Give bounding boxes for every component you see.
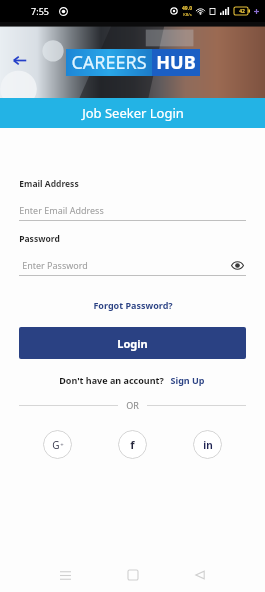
button[interactable]: Back <box>187 562 213 588</box>
button[interactable]: Enter Password <box>19 255 246 275</box>
button[interactable]: Login <box>19 327 246 359</box>
staticText: CAREERS <box>71 50 147 75</box>
staticText: 7:55 <box>31 5 49 17</box>
button[interactable]: CAREERS <box>66 49 200 76</box>
staticText: OR <box>126 399 139 411</box>
button[interactable]: Show password <box>228 256 246 274</box>
button[interactable]: Sign in with Facebook <box>118 430 147 459</box>
staticText: Job Seeker Login <box>82 104 184 122</box>
staticText: Forgot Password? <box>93 299 173 311</box>
button[interactable]: Sign in with Google <box>43 430 72 459</box>
staticText: Enter Email Address <box>19 204 104 216</box>
staticText: Password <box>19 233 60 245</box>
button[interactable]: Recents <box>52 562 78 588</box>
staticText: Don't have an account? <box>59 374 164 386</box>
button[interactable]: Sign Up <box>168 372 207 388</box>
staticText: Sign Up <box>170 374 205 386</box>
staticText: KB/s <box>183 12 192 17</box>
staticText: 42 <box>239 8 245 15</box>
staticText: Login <box>117 336 148 351</box>
button[interactable]: Forgot Password? <box>87 296 179 314</box>
staticText: HUB <box>156 50 196 75</box>
button[interactable]: Enter Email Address <box>19 200 246 220</box>
staticText: 49.0 <box>182 5 192 12</box>
staticText: in <box>203 438 213 452</box>
staticText: + <box>60 441 64 449</box>
staticText: f <box>130 437 135 452</box>
button[interactable]: Back <box>6 47 32 73</box>
staticText: G <box>52 438 60 452</box>
staticText: Enter Password <box>22 259 88 271</box>
button[interactable]: Sign in with LinkedIn <box>193 430 222 459</box>
button[interactable]: Home <box>120 562 146 588</box>
staticText: Email Address <box>19 178 79 190</box>
